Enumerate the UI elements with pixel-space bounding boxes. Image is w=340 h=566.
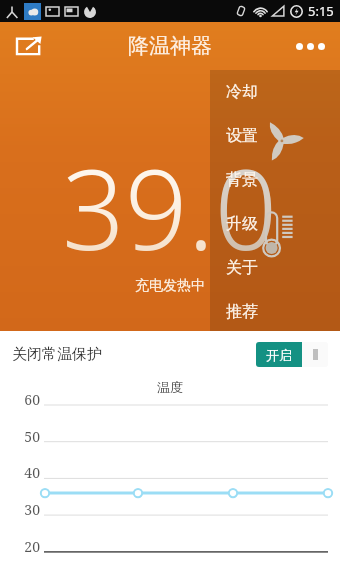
staticText: 关于 [226, 258, 258, 278]
button[interactable]: 推荐 [210, 290, 340, 334]
staticText: 20 [24, 537, 40, 556]
staticText: 背景 [226, 170, 258, 190]
button[interactable]: 开启 [256, 342, 328, 367]
button[interactable]: More options [288, 28, 332, 64]
staticText: 设置 [226, 126, 258, 146]
staticText: 推荐 [226, 302, 258, 322]
staticText: 30 [24, 500, 40, 519]
button[interactable]: 背景 [210, 158, 340, 202]
button[interactable]: 设置 [210, 114, 340, 158]
staticText: 开启 [266, 347, 292, 363]
button[interactable]: 冷却 [210, 70, 340, 114]
staticText: 降温神器 [128, 33, 212, 59]
staticText: 冷却 [226, 82, 258, 102]
staticText: 39.0 [62, 132, 278, 282]
button[interactable]: Share [12, 29, 46, 63]
button[interactable]: 关于 [210, 246, 340, 290]
staticText: 60 [24, 390, 40, 409]
staticText: 40 [24, 463, 40, 482]
staticText: 50 [24, 427, 40, 446]
staticText: 温度 [157, 379, 183, 395]
staticText: 5:15 [308, 2, 334, 20]
staticText: 关闭常温保护 [12, 345, 102, 364]
staticText: 升级 [226, 214, 258, 234]
staticText: 充电发热中 [135, 277, 205, 295]
button[interactable]: 升级 [210, 202, 340, 246]
